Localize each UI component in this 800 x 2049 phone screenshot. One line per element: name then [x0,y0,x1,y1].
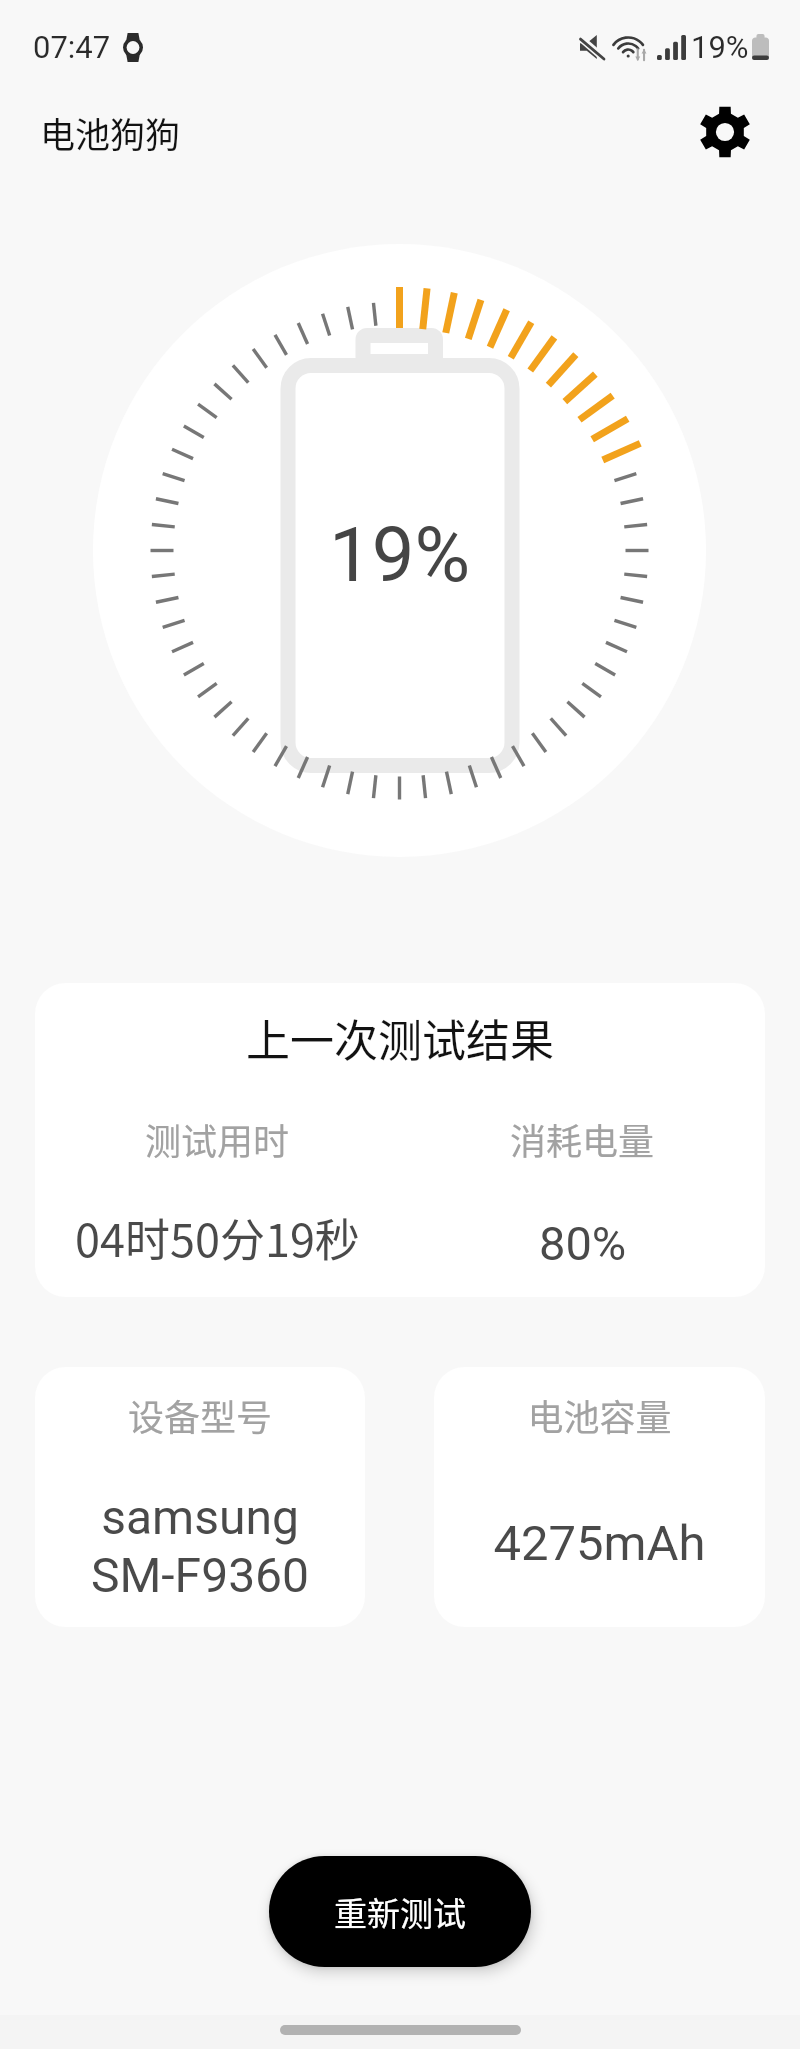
button[interactable]: Settings [693,100,757,164]
staticText: 上一次测试结果 [35,1006,765,1070]
staticText: 19% [329,510,471,599]
staticText: 4275mAh [434,1515,765,1572]
staticText: 80% [539,1216,627,1271]
staticText: 测试用时 [145,1113,290,1165]
staticText: 19% [691,29,749,65]
staticText: 电池容量 [434,1389,765,1441]
staticText: 消耗电量 [510,1113,655,1165]
staticText: 04时50分19秒 [75,1205,360,1270]
staticText: 重新测试 [334,1888,466,1936]
staticText: samsung SM-F9360 [35,1489,365,1604]
button[interactable]: 重新测试 [269,1856,531,1967]
staticText: 设备型号 [35,1389,365,1441]
button[interactable]: 上一次测试结果 [35,983,765,1297]
staticText: 电池狗狗 [40,107,181,158]
staticText: 07:47 [33,29,111,65]
button[interactable]: 电池容量 [434,1367,765,1627]
button[interactable]: 设备型号 [35,1367,365,1627]
